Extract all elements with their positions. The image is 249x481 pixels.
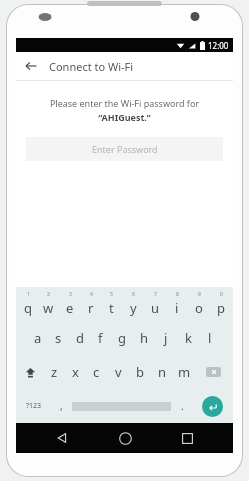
staticText: v bbox=[115, 363, 122, 381]
button[interactable]: 8 bbox=[166, 287, 188, 321]
staticText: Please enter the Wi-Fi password for bbox=[26, 97, 223, 109]
button[interactable]: Back bbox=[21, 56, 41, 76]
staticText: 4 bbox=[90, 291, 93, 298]
button[interactable]: 9 bbox=[188, 287, 210, 321]
staticText: c bbox=[93, 363, 100, 381]
button[interactable]: j bbox=[155, 321, 177, 355]
button[interactable]: c bbox=[86, 355, 107, 389]
button[interactable]: f bbox=[90, 321, 111, 355]
button[interactable]: l bbox=[199, 321, 221, 355]
button[interactable]: 2 bbox=[38, 287, 59, 321]
staticText: 3 bbox=[69, 291, 72, 298]
staticText: w bbox=[43, 299, 54, 317]
staticText: b bbox=[136, 363, 144, 381]
button[interactable]: k bbox=[177, 321, 199, 355]
staticText: n bbox=[158, 363, 167, 381]
button[interactable]: Shift bbox=[17, 355, 44, 389]
button[interactable]: a bbox=[27, 321, 48, 355]
staticText: z bbox=[51, 363, 58, 381]
staticText: a bbox=[34, 329, 42, 347]
button[interactable]: Recent apps bbox=[170, 423, 204, 453]
staticText: t bbox=[109, 299, 114, 317]
staticText: . bbox=[181, 399, 184, 413]
staticText: y bbox=[130, 299, 137, 317]
staticText: l bbox=[208, 329, 212, 347]
staticText: 0 bbox=[220, 291, 223, 298]
staticText: u bbox=[151, 299, 160, 317]
staticText: 6 bbox=[132, 291, 135, 298]
button[interactable]: Back bbox=[45, 423, 79, 453]
staticText: o bbox=[195, 299, 203, 317]
staticText: , bbox=[60, 399, 63, 413]
button[interactable]: 7 bbox=[144, 287, 166, 321]
staticText: 2 bbox=[47, 291, 50, 298]
staticText: r bbox=[88, 299, 94, 317]
button[interactable]: Enter bbox=[193, 389, 232, 423]
staticText: 12:00 bbox=[208, 40, 229, 51]
button[interactable]: s bbox=[48, 321, 69, 355]
staticText: 8 bbox=[176, 291, 179, 298]
button[interactable]: Comma bbox=[50, 389, 72, 423]
button[interactable]: g bbox=[111, 321, 133, 355]
staticText: g bbox=[118, 329, 126, 347]
staticText: h bbox=[140, 329, 149, 347]
staticText: d bbox=[76, 329, 84, 347]
staticText: x bbox=[72, 363, 79, 381]
button[interactable]: 0 bbox=[210, 287, 232, 321]
button[interactable]: Enter Password bbox=[26, 137, 223, 161]
button[interactable]: b bbox=[129, 355, 151, 389]
button[interactable]: Space bbox=[72, 397, 171, 415]
staticText: e bbox=[66, 299, 74, 317]
button[interactable]: n bbox=[151, 355, 173, 389]
staticText: j bbox=[164, 329, 168, 347]
button[interactable]: h bbox=[133, 321, 155, 355]
button[interactable]: d bbox=[69, 321, 90, 355]
button[interactable]: 6 bbox=[122, 287, 144, 321]
button[interactable]: 1 bbox=[17, 287, 38, 321]
staticText: Enter Password bbox=[92, 143, 158, 155]
button[interactable]: ?123 bbox=[17, 389, 50, 423]
button[interactable]: Period bbox=[171, 389, 193, 423]
staticText: 5 bbox=[110, 291, 113, 298]
button[interactable]: 5 bbox=[101, 287, 122, 321]
staticText: k bbox=[185, 329, 192, 347]
staticText: “AHIGuest.” bbox=[26, 111, 223, 123]
staticText: s bbox=[55, 329, 62, 347]
button[interactable]: x bbox=[65, 355, 86, 389]
staticText: p bbox=[217, 299, 225, 317]
button[interactable]: 3 bbox=[59, 287, 80, 321]
staticText: 9 bbox=[198, 291, 201, 298]
button[interactable]: 4 bbox=[80, 287, 101, 321]
staticText: 7 bbox=[154, 291, 157, 298]
staticText: m bbox=[178, 363, 191, 381]
staticText: i bbox=[175, 299, 179, 317]
button[interactable]: v bbox=[107, 355, 129, 389]
button[interactable]: Backspace bbox=[195, 355, 232, 389]
staticText: 1 bbox=[27, 291, 30, 298]
button[interactable]: m bbox=[173, 355, 195, 389]
button[interactable]: Home bbox=[108, 423, 142, 453]
button[interactable]: z bbox=[44, 355, 65, 389]
staticText: ?123 bbox=[26, 401, 42, 411]
staticText: f bbox=[98, 329, 103, 347]
staticText: q bbox=[24, 299, 32, 317]
staticText: Connect to Wi-Fi bbox=[49, 59, 134, 74]
